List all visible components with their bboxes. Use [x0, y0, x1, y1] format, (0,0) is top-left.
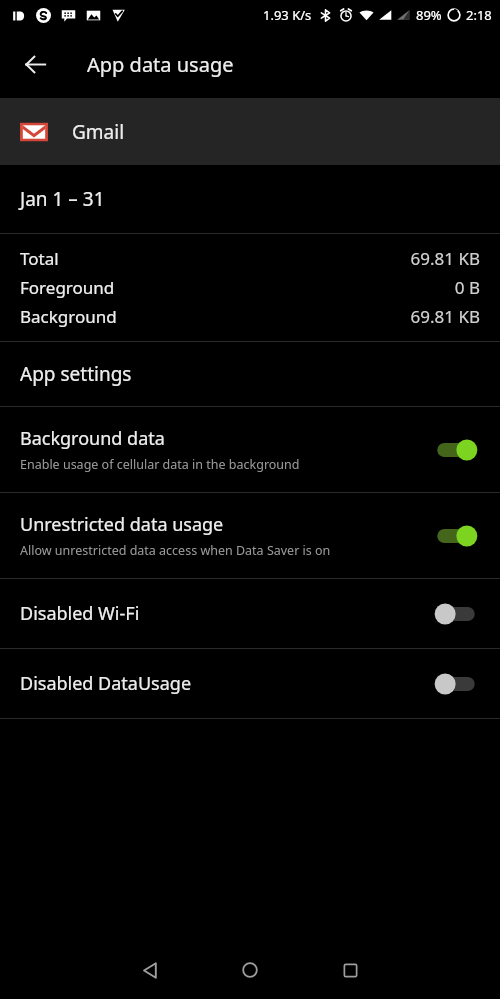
staticText: 2:18 [466, 6, 492, 24]
staticText: 1.93 K/s [263, 6, 312, 24]
button[interactable]: Toggle off [430, 669, 482, 699]
staticText: Background data [20, 426, 165, 451]
button[interactable]: Gmail [0, 98, 500, 165]
staticText: Disabled DataUsage [20, 671, 192, 696]
staticText: App settings [20, 361, 132, 387]
button[interactable]: Toggle off [430, 599, 482, 629]
button[interactable]: Disabled DataUsage [0, 649, 500, 718]
staticText: Disabled Wi-Fi [20, 601, 140, 626]
staticText: Gmail [72, 119, 125, 145]
staticText: Allow unrestricted data access when Data… [20, 542, 331, 559]
button[interactable]: Jan 1 – 31 [0, 165, 500, 233]
staticText: 69.81 KB [410, 247, 480, 270]
staticText: 0 B [454, 276, 480, 299]
staticText: Background [20, 305, 117, 328]
staticText: Unrestricted data usage [20, 512, 224, 537]
staticText: App data usage [87, 51, 234, 78]
button[interactable]: Recent apps [300, 941, 400, 999]
staticText: Enable usage of cellular data in the bac… [20, 456, 300, 473]
button[interactable]: Toggle on [430, 435, 482, 465]
button[interactable]: Background data [0, 407, 500, 492]
button[interactable]: Toggle on [430, 521, 482, 551]
staticText: Foreground [20, 276, 115, 299]
button[interactable]: Back [100, 941, 200, 999]
button[interactable]: Unrestricted data usage [0, 493, 500, 578]
staticText: 69.81 KB [410, 305, 480, 328]
staticText: Total [20, 247, 59, 270]
button[interactable]: Back [11, 40, 59, 88]
button[interactable]: Home [200, 941, 300, 999]
button[interactable]: Disabled Wi-Fi [0, 579, 500, 648]
staticText: 89% [416, 6, 442, 24]
staticText: Jan 1 – 31 [20, 186, 105, 212]
